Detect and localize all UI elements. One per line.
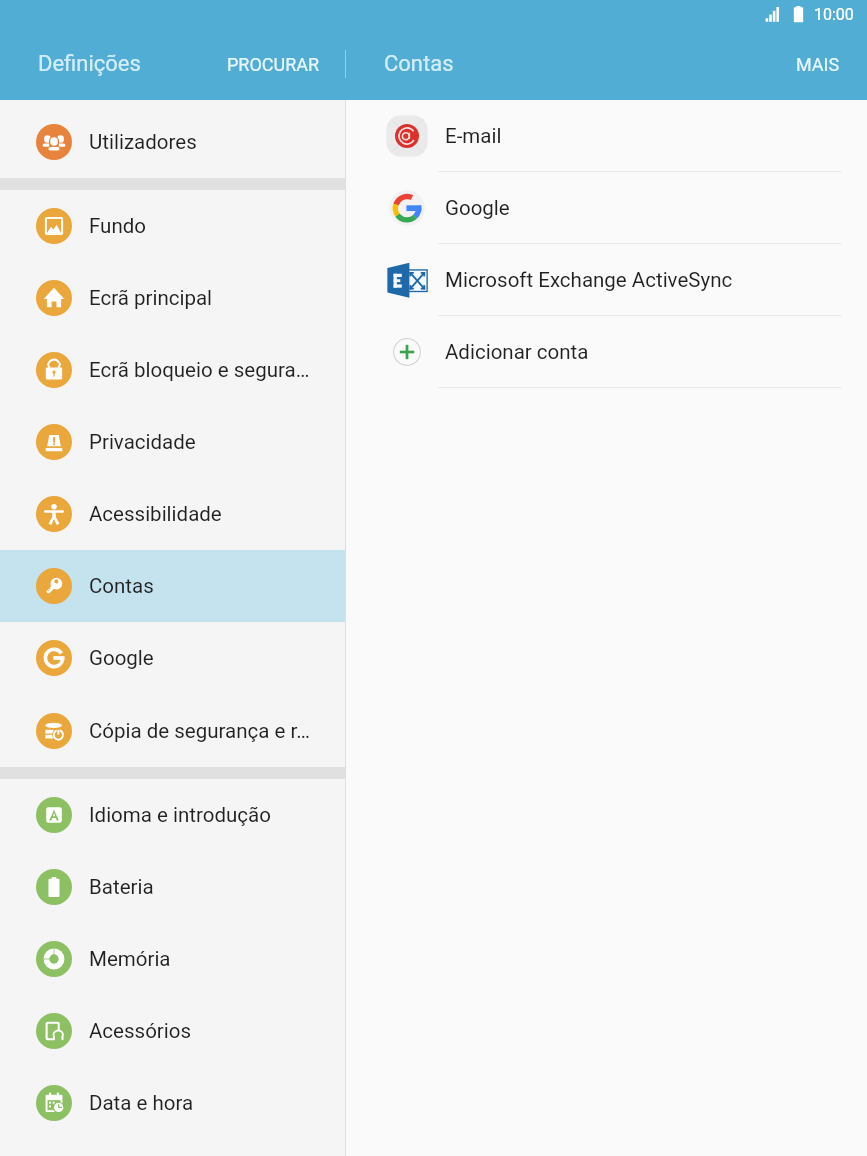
button[interactable]: Privacidade [0, 406, 345, 478]
staticText: Acessibilidade [89, 502, 222, 526]
button[interactable]: Memória [0, 923, 345, 995]
staticText: E-mail [445, 124, 502, 148]
button[interactable]: Contas [0, 550, 345, 622]
button[interactable]: Google [346, 172, 867, 244]
button[interactable]: Acessibilidade [0, 478, 345, 550]
button[interactable]: Cópia de segurança e r… [0, 694, 345, 767]
staticText: Contas [384, 51, 454, 77]
button[interactable]: Microsoft Exchange ActiveSync [346, 244, 867, 316]
staticText: Adicionar conta [445, 340, 589, 364]
staticText: PROCURAR [227, 54, 320, 75]
button[interactable]: Idioma e introdução [0, 779, 345, 851]
button[interactable]: MAIS [784, 45, 867, 84]
button[interactable]: PROCURAR [217, 45, 330, 84]
staticText: MAIS [796, 54, 840, 75]
staticText: 10:00 [814, 5, 854, 24]
staticText: Acessórios [89, 1019, 192, 1043]
staticText: Privacidade [89, 430, 196, 454]
staticText: Memória [89, 947, 171, 971]
button[interactable]: Fundo [0, 190, 345, 262]
staticText: Fundo [89, 214, 146, 238]
staticText: Ecrã principal [89, 286, 213, 310]
staticText: Cópia de segurança e r… [89, 719, 310, 743]
staticText: Ecrã bloqueio e segura… [89, 358, 310, 382]
staticText: Definições [38, 51, 141, 77]
button[interactable]: Acessórios [0, 995, 345, 1067]
staticText: Bateria [89, 875, 154, 899]
button[interactable]: E-mail [346, 100, 867, 172]
button[interactable]: Ecrã bloqueio e segura… [0, 334, 345, 406]
button[interactable]: Adicionar conta [346, 316, 867, 388]
staticText: Utilizadores [89, 130, 197, 154]
staticText: Idioma e introdução [89, 803, 271, 827]
staticText: Contas [89, 574, 154, 598]
staticText: Data e hora [89, 1091, 194, 1115]
other: Battery [790, 5, 808, 23]
button[interactable]: Data e hora [0, 1067, 345, 1139]
button[interactable]: Ecrã principal [0, 262, 345, 334]
button[interactable]: Utilizadores [0, 100, 345, 178]
staticText: Google [89, 646, 154, 670]
other: Signal strength [765, 5, 783, 23]
staticText: Microsoft Exchange ActiveSync [445, 268, 733, 292]
button[interactable]: Google [0, 622, 345, 694]
button[interactable]: Definições [0, 43, 151, 85]
button[interactable]: Bateria [0, 851, 345, 923]
staticText: Google [445, 196, 510, 220]
